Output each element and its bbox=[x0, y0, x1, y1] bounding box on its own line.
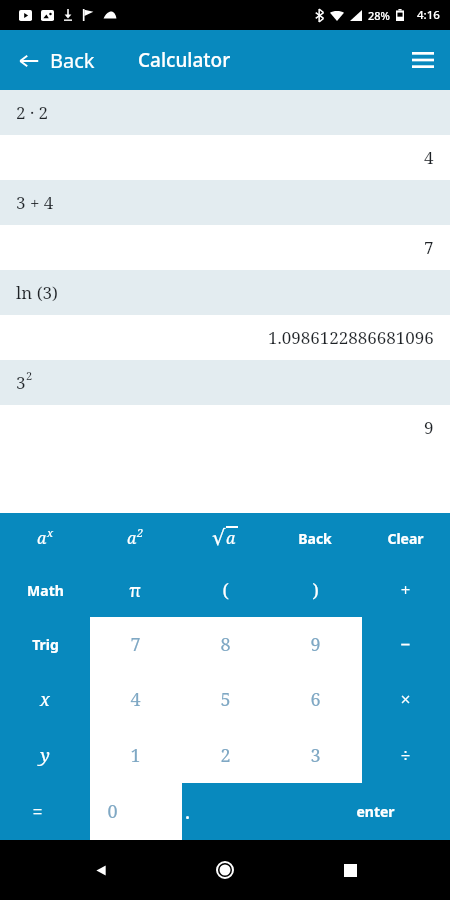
button[interactable]: 3 bbox=[0, 360, 450, 405]
button[interactable]: 0 bbox=[75, 783, 150, 840]
button[interactable]: × bbox=[360, 672, 450, 727]
staticText: 3 + 4 bbox=[16, 191, 54, 214]
button[interactable]: Recents bbox=[326, 846, 374, 894]
button[interactable]: . bbox=[150, 783, 225, 840]
button[interactable]: 5 bbox=[180, 672, 270, 727]
button[interactable]: 3 + 4 bbox=[0, 180, 450, 225]
staticText: y bbox=[40, 743, 50, 768]
staticText: × bbox=[400, 687, 411, 712]
button[interactable]: 8 bbox=[180, 617, 270, 672]
staticText: Calculator bbox=[138, 47, 231, 73]
button[interactable]: − bbox=[360, 617, 450, 672]
staticText: 4:16 bbox=[417, 7, 440, 23]
button[interactable]: ÷ bbox=[360, 727, 450, 783]
staticText: Back bbox=[50, 47, 95, 74]
staticText: √ bbox=[212, 526, 226, 550]
button[interactable]: 7 bbox=[90, 617, 180, 672]
button[interactable]: + bbox=[360, 563, 450, 617]
staticText: 9 bbox=[310, 632, 321, 657]
staticText: + bbox=[400, 578, 411, 603]
staticText: 5 bbox=[220, 687, 231, 712]
staticText: enter bbox=[356, 802, 395, 821]
staticText: 7 bbox=[424, 236, 434, 259]
button[interactable]: 9 bbox=[0, 405, 450, 450]
staticText: Trig bbox=[32, 635, 59, 654]
button[interactable]: Home bbox=[201, 846, 249, 894]
staticText: 9 bbox=[424, 416, 434, 439]
staticText: Math bbox=[27, 581, 64, 600]
button[interactable]: Back bbox=[270, 513, 360, 563]
button[interactable]: 2 · 2 bbox=[0, 90, 450, 135]
staticText: π bbox=[129, 578, 141, 603]
staticText: ( bbox=[222, 578, 229, 603]
button[interactable]: 6 bbox=[270, 672, 360, 727]
staticText: 4 bbox=[424, 146, 434, 169]
button[interactable]: 4 bbox=[90, 672, 180, 727]
staticText: a bbox=[37, 527, 47, 549]
button[interactable]: enter bbox=[300, 783, 450, 840]
staticText: − bbox=[400, 632, 411, 657]
button[interactable]: a bbox=[90, 513, 180, 563]
staticText: x bbox=[40, 687, 50, 712]
staticText: 2 bbox=[220, 743, 231, 768]
staticText: 1 bbox=[130, 743, 141, 768]
button[interactable]: 1.0986122886681096 bbox=[0, 315, 450, 360]
button[interactable]: 9 bbox=[270, 617, 360, 672]
staticText: = bbox=[32, 799, 43, 824]
staticText: Back bbox=[298, 529, 332, 548]
button[interactable]: x bbox=[0, 672, 90, 727]
button[interactable]: ( bbox=[180, 563, 270, 617]
staticText: . bbox=[185, 798, 190, 825]
button[interactable]: = bbox=[0, 783, 75, 840]
staticText: 3 bbox=[16, 371, 26, 394]
button[interactable]: a bbox=[0, 513, 90, 563]
button[interactable]: ln (3) bbox=[0, 270, 450, 315]
staticText: 4 bbox=[130, 687, 141, 712]
staticText: 3 bbox=[310, 743, 321, 768]
button[interactable]: 2 bbox=[180, 727, 270, 783]
staticText: 2 bbox=[137, 525, 144, 540]
button[interactable]: Clear bbox=[360, 513, 450, 563]
staticText: a bbox=[127, 527, 137, 549]
staticText: 7 bbox=[130, 632, 141, 657]
button[interactable]: ) bbox=[270, 563, 360, 617]
staticText: ln (3) bbox=[16, 281, 58, 304]
staticText: 0 bbox=[107, 799, 118, 824]
staticText: 28% bbox=[368, 8, 390, 23]
button[interactable]: Trig bbox=[0, 617, 90, 672]
button[interactable]: 1 bbox=[90, 727, 180, 783]
staticText: 1.0986122886681096 bbox=[268, 326, 434, 349]
staticText: 8 bbox=[220, 632, 231, 657]
staticText: Clear bbox=[387, 529, 424, 548]
staticText: 6 bbox=[310, 687, 321, 712]
button[interactable]: Menu bbox=[396, 38, 450, 82]
button[interactable]: 3 bbox=[270, 727, 360, 783]
staticText: ÷ bbox=[400, 743, 411, 768]
button[interactable]: π bbox=[90, 563, 180, 617]
button[interactable]: Back bbox=[0, 41, 105, 80]
button[interactable]: 4 bbox=[0, 135, 450, 180]
staticText: 2 bbox=[26, 368, 33, 383]
staticText: ) bbox=[312, 578, 319, 603]
staticText: a bbox=[226, 527, 236, 549]
button[interactable]: y bbox=[0, 727, 90, 783]
staticText: x bbox=[47, 525, 54, 540]
button[interactable]: Math bbox=[0, 563, 90, 617]
button[interactable]: √ bbox=[180, 513, 270, 563]
button[interactable]: Back bbox=[77, 846, 125, 894]
button[interactable]: 7 bbox=[0, 225, 450, 270]
staticText: 2 · 2 bbox=[16, 101, 49, 124]
